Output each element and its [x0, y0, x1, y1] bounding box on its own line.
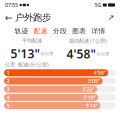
button[interactable]: 轨迹 — [12, 25, 31, 37]
staticText: 图表 — [72, 27, 86, 35]
staticText: 分/公里 — [40, 51, 53, 56]
staticText: 4'58" — [66, 46, 95, 62]
staticText: 5 — [6, 102, 9, 109]
button[interactable]: 分享 — [105, 10, 117, 24]
staticText: 5'22" — [82, 86, 94, 93]
staticText: 5'19" — [84, 94, 96, 101]
staticText: 户外跑步 — [15, 12, 51, 23]
staticText: 4 — [6, 94, 9, 101]
staticText: 最快配速 (1公里) — [69, 37, 107, 44]
staticText: 轨迹 — [15, 27, 29, 35]
staticText: 5G — [95, 1, 102, 9]
staticText: 1 — [6, 69, 9, 76]
staticText: 详情 — [91, 27, 105, 35]
button[interactable]: 图表 — [70, 25, 89, 37]
staticText: ↗ — [107, 13, 114, 22]
button[interactable]: 配速 — [31, 25, 50, 37]
staticText: 3 — [6, 86, 9, 93]
staticText: 配速 — [34, 27, 48, 35]
staticText: 分段 — [53, 27, 67, 35]
staticText: 公里 — [5, 61, 15, 68]
button[interactable]: 详情 — [89, 25, 108, 37]
staticText: 2 — [6, 77, 9, 84]
staticText: 配速(分/公里) — [18, 61, 49, 68]
staticText: 07:55 — [5, 1, 18, 9]
staticText: 5'14" — [86, 102, 98, 109]
button[interactable]: 返回 — [3, 10, 15, 24]
staticText: ← — [5, 12, 13, 23]
button[interactable]: 分段 — [50, 25, 70, 37]
staticText: 分/公里 — [96, 51, 109, 56]
staticText: 5'13" — [10, 46, 39, 61]
staticText: 平均配速 — [22, 37, 42, 44]
staticText: 5'05" — [88, 77, 100, 84]
staticText: 4'58" — [94, 69, 106, 76]
